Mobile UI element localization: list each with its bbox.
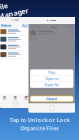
staticText: Edit	[68, 24, 74, 29]
staticText: Videos	[30, 24, 41, 29]
button[interactable]: Cancel	[30, 96, 73, 102]
staticText: Share file	[44, 82, 59, 87]
staticText: Open in	[45, 76, 58, 81]
staticText: Apps	[50, 24, 58, 29]
staticText: Back	[30, 37, 38, 41]
staticText: Videos	[0, 23, 11, 28]
button[interactable]: Share file	[30, 82, 73, 88]
staticText: Manager	[0, 9, 27, 18]
staticText: Play	[48, 70, 55, 75]
staticText: Organize Files	[20, 124, 59, 132]
button[interactable]: Play	[30, 69, 73, 75]
button[interactable]: Open in	[30, 76, 73, 82]
staticText: Tap to Unlock or Lock	[9, 116, 69, 124]
staticText: File	[0, 0, 8, 9]
staticText: Apps	[22, 23, 30, 28]
staticText: Cancel	[46, 96, 57, 101]
